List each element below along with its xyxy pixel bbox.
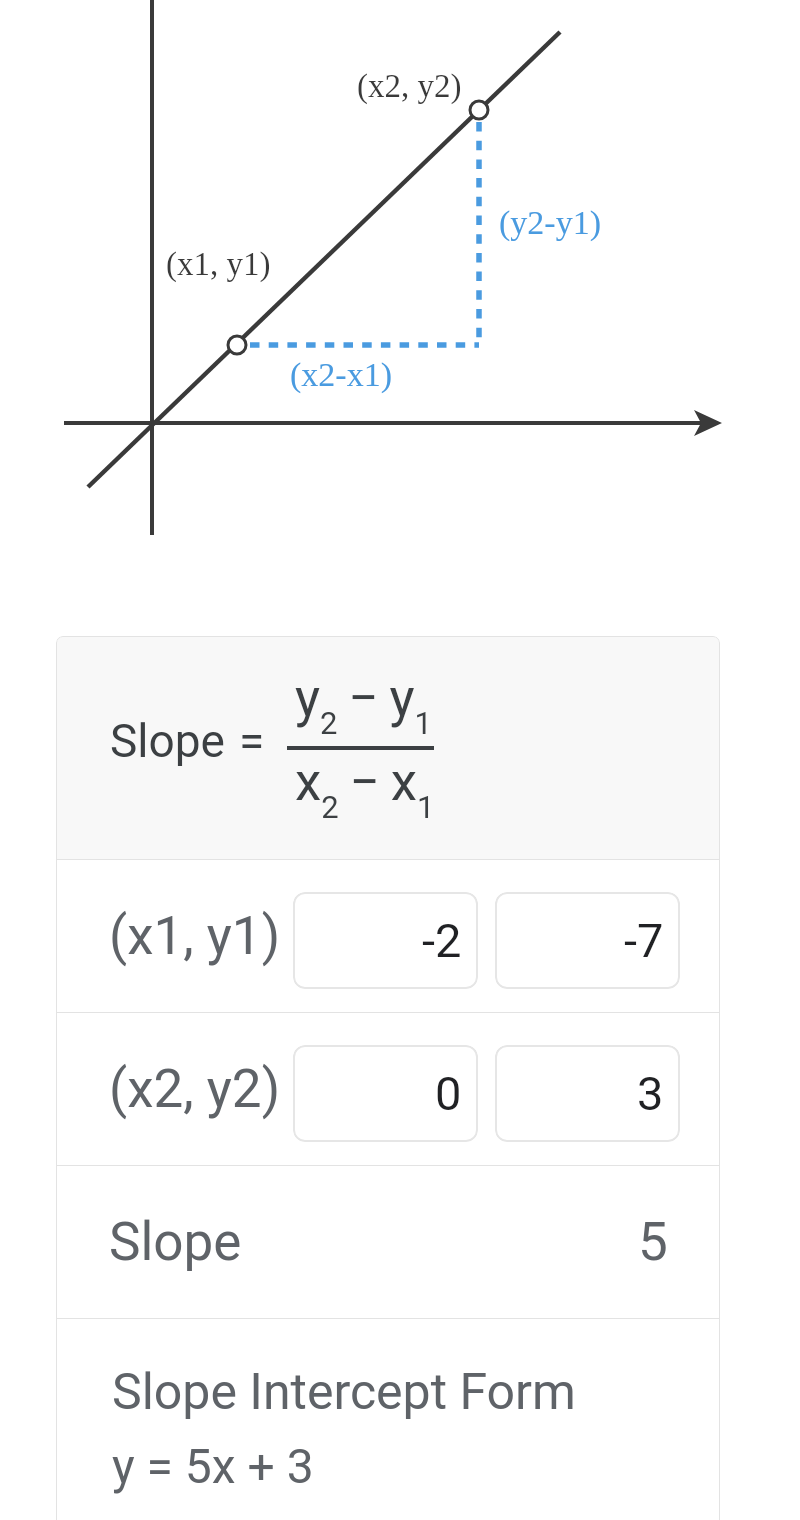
button[interactable]: -2 [293, 892, 478, 989]
staticText: Slope = [110, 714, 265, 768]
staticText: (y2-y1) [499, 204, 601, 242]
button[interactable]: 0 [293, 1045, 478, 1142]
staticText: Slope [109, 1211, 242, 1273]
button[interactable]: Slope [56, 1166, 720, 1318]
staticText: 5 [638, 1211, 668, 1273]
staticText: (x1, y1) [109, 905, 281, 967]
staticText: y2 − y1 [295, 667, 432, 742]
staticText: x2 − x1 [295, 751, 435, 826]
staticText: 3 [637, 1066, 664, 1121]
staticText: (x2, y2) [357, 68, 462, 105]
staticText: (x2, y2) [109, 1058, 281, 1120]
staticText: (x2-x1) [290, 356, 392, 394]
staticText: -2 [422, 913, 462, 968]
staticText: 0 [435, 1066, 462, 1121]
button[interactable]: 3 [495, 1045, 680, 1142]
other: Slope between two points on a line diagr… [0, 0, 800, 1520]
button[interactable]: -7 [495, 892, 680, 989]
staticText: (x1, y1) [166, 246, 271, 283]
staticText: y = 5x + 3 [112, 1438, 314, 1494]
staticText: Slope Intercept Form [112, 1363, 576, 1422]
button[interactable]: Slope Intercept Form [56, 1319, 720, 1520]
staticText: -7 [624, 913, 664, 968]
